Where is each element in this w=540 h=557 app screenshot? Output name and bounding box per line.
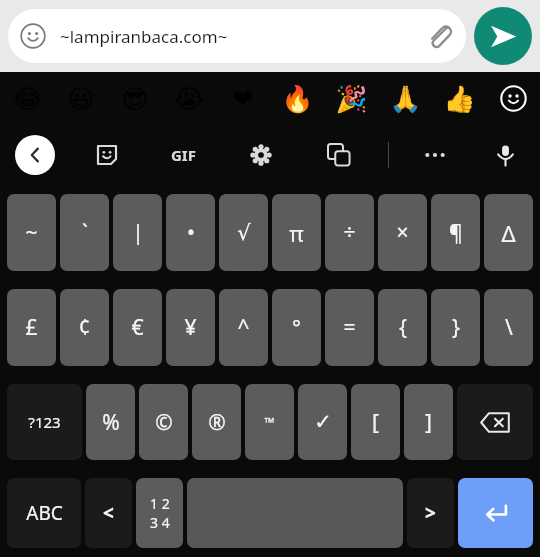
staticText: 1 2 — [150, 494, 170, 513]
staticText: ~lampiranbaca.com~ — [60, 25, 228, 48]
other: Emoji — [20, 23, 46, 49]
button[interactable]: 1 2 — [136, 478, 183, 548]
staticText: | — [132, 218, 144, 247]
button[interactable]: Space — [187, 478, 403, 548]
staticText: ¢ — [78, 313, 91, 342]
button[interactable]: ✓ — [298, 384, 347, 460]
staticText: ✓ — [314, 410, 332, 434]
button[interactable]: GIF — [158, 134, 208, 176]
other: Attach file — [424, 21, 454, 51]
button[interactable]: More emoji — [486, 72, 540, 125]
button[interactable]: \ — [484, 289, 533, 366]
button[interactable]: Send — [474, 7, 532, 65]
button[interactable]: Emoji — [8, 9, 466, 63]
staticText: ABC — [26, 500, 63, 526]
button[interactable]: ¢ — [60, 289, 109, 366]
staticText: ^ — [237, 313, 250, 342]
staticText: √ — [237, 221, 251, 245]
button[interactable]: { — [378, 289, 427, 366]
button[interactable]: ¥ — [166, 289, 215, 366]
staticText: ` — [82, 218, 88, 247]
staticText: × — [396, 218, 409, 247]
button[interactable]: = — [325, 289, 374, 366]
staticText: ® — [208, 408, 226, 437]
button[interactable]: < — [85, 478, 132, 548]
staticText: ❤️ — [232, 84, 254, 114]
button[interactable]: ] — [404, 384, 453, 460]
button[interactable]: | — [113, 194, 162, 271]
staticText: 😂 — [12, 84, 43, 114]
button[interactable]: ABC — [7, 478, 81, 548]
staticText: < — [103, 500, 114, 526]
button[interactable]: Voice input — [484, 134, 526, 176]
button[interactable]: π — [272, 194, 321, 271]
button[interactable]: Enter — [458, 478, 533, 548]
staticText: 🔥 — [281, 84, 314, 114]
staticText: ?123 — [28, 412, 61, 432]
staticText: 🎉 — [335, 84, 368, 114]
staticText: © — [155, 408, 173, 437]
button[interactable]: Translate — [318, 134, 360, 176]
button[interactable]: ¶ — [431, 194, 480, 271]
button[interactable]: Back — [15, 135, 55, 175]
button[interactable]: ~ — [7, 194, 56, 271]
button[interactable]: • — [166, 194, 215, 271]
staticText: 😭 — [174, 84, 205, 114]
button[interactable]: } — [431, 289, 480, 366]
staticText: \ — [505, 313, 513, 342]
staticText: 😃 — [67, 84, 95, 114]
button[interactable]: ® — [192, 384, 241, 460]
staticText: • — [187, 218, 195, 247]
staticText: ° — [292, 313, 301, 342]
staticText: £ — [25, 313, 38, 342]
button[interactable]: 🎉 — [324, 72, 378, 125]
staticText: [ — [372, 408, 379, 437]
staticText: ] — [425, 408, 432, 437]
button[interactable]: Settings — [240, 134, 282, 176]
staticText: ¥ — [184, 313, 197, 342]
button[interactable]: Δ — [484, 194, 533, 271]
staticText: } — [452, 313, 460, 342]
button[interactable]: ` — [60, 194, 109, 271]
button[interactable]: ÷ — [325, 194, 374, 271]
staticText: { — [399, 313, 407, 342]
staticText: 👍 — [443, 84, 476, 114]
button[interactable]: ?123 — [7, 384, 82, 460]
staticText: ™ — [264, 413, 275, 431]
button[interactable]: © — [139, 384, 188, 460]
button[interactable]: ^ — [219, 289, 268, 366]
staticText: Δ — [501, 218, 516, 248]
staticText: 🙏 — [389, 84, 422, 114]
button[interactable]: € — [113, 289, 162, 366]
staticText: € — [131, 313, 144, 342]
button[interactable]: > — [407, 478, 454, 548]
button[interactable]: 🙏 — [378, 72, 432, 125]
button[interactable]: More options — [412, 132, 458, 178]
button[interactable]: ™ — [245, 384, 294, 460]
button[interactable]: ° — [272, 289, 321, 366]
staticText: ¶ — [449, 218, 463, 247]
staticText: 3 4 — [150, 513, 170, 532]
button[interactable]: Backspace — [457, 384, 533, 460]
staticText: ÷ — [343, 218, 356, 247]
button[interactable]: √ — [219, 194, 268, 271]
staticText: > — [425, 500, 436, 526]
button[interactable]: Stickers — [86, 134, 128, 176]
button[interactable]: [ — [351, 384, 400, 460]
staticText: 😎 — [121, 84, 149, 114]
staticText: = — [343, 313, 356, 342]
staticText: ~ — [25, 218, 38, 247]
button[interactable]: £ — [7, 289, 56, 366]
staticText: π — [289, 218, 304, 248]
staticText: GIF — [171, 145, 196, 165]
button[interactable]: × — [378, 194, 427, 271]
button[interactable]: 🔥 — [270, 72, 324, 125]
staticText: % — [102, 408, 120, 437]
button[interactable]: 👍 — [432, 72, 486, 125]
button[interactable]: % — [86, 384, 135, 460]
